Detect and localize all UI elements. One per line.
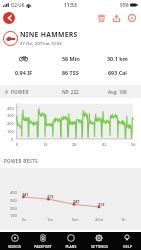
button[interactable]: PASSPORT — [29, 232, 57, 250]
staticText: NP: 222 — [62, 89, 79, 95]
staticText: VIDEOS — [8, 244, 21, 249]
staticText: 400 — [7, 106, 14, 111]
button[interactable]: SETTINGS — [85, 232, 113, 250]
button[interactable]: PLANS — [57, 232, 85, 250]
staticText: PASSPORT — [34, 244, 52, 249]
staticText: 42 — [102, 142, 107, 147]
button[interactable]: Back — [3, 12, 15, 24]
staticText: 247 — [73, 199, 80, 204]
staticText: 400 — [10, 190, 17, 195]
staticText: 0.94 IF — [15, 69, 33, 76]
staticText: 100 — [10, 213, 17, 218]
staticText: 313 — [47, 194, 54, 199]
staticText: 5s — [22, 217, 27, 222]
staticText: SETTINGS — [91, 244, 108, 249]
staticText: 200 — [10, 206, 17, 211]
staticText: 95% — [120, 2, 129, 8]
staticText: 100 — [7, 129, 14, 134]
staticText: 56 — [131, 142, 136, 147]
staticText: 200 — [7, 121, 14, 126]
staticText: Avg: 198 — [108, 89, 127, 95]
button[interactable]: Delete — [94, 11, 109, 25]
staticText: 14 — [43, 142, 48, 147]
staticText: 0 — [16, 142, 19, 147]
staticText: 0 — [11, 137, 14, 142]
staticText: 1h — [121, 217, 126, 222]
staticText: 30.1 km — [107, 55, 128, 62]
staticText: O2-UK — [11, 2, 25, 8]
staticText: 11:53 — [64, 2, 77, 9]
staticText: 5m — [72, 217, 78, 222]
button[interactable]: VIDEOS — [0, 232, 29, 250]
staticText: PLANS — [65, 244, 77, 249]
staticText: 213 — [98, 202, 105, 207]
staticText: 20m — [95, 217, 104, 222]
staticText: HELP — [123, 244, 132, 249]
staticText: 693 Cal — [108, 69, 127, 76]
staticText: 28 — [72, 142, 77, 147]
staticText: 27 Oct, 2019 at 10:54 — [20, 41, 62, 47]
staticText: POWER — [11, 89, 29, 95]
staticText: 300 — [7, 113, 14, 118]
staticText: 300 — [10, 198, 17, 203]
staticText: POWER BESTS — [4, 158, 38, 164]
button[interactable]: Play ride — [124, 11, 139, 25]
staticText: 86 TSS — [62, 69, 79, 76]
button[interactable]: HELP — [113, 232, 141, 250]
staticText: 58 Min — [62, 55, 80, 62]
staticText: 1m — [47, 217, 53, 222]
staticText: NINE HAMMERS — [20, 30, 78, 39]
staticText: 341 — [22, 192, 29, 197]
button[interactable]: Share — [109, 11, 124, 25]
